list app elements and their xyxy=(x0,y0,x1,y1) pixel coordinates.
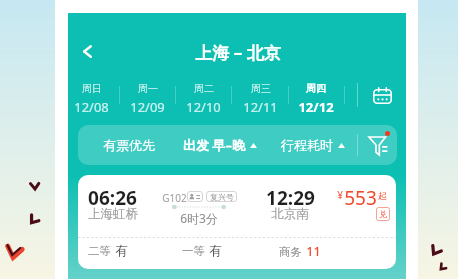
staticText: ¥ xyxy=(337,188,343,202)
staticText: 553 xyxy=(344,185,377,211)
button[interactable]: 周二 xyxy=(175,77,231,117)
button[interactable]: 周四 xyxy=(288,77,344,117)
staticText: 周日 xyxy=(82,82,102,95)
button[interactable]: 周日 xyxy=(63,77,119,117)
staticText: 出发 早–晚 xyxy=(183,136,245,154)
button[interactable]: 有票优先 xyxy=(78,125,180,165)
staticText: 上海虹桥 xyxy=(88,206,138,222)
staticText: 周一 xyxy=(138,82,158,95)
staticText: 12/09 xyxy=(130,98,165,116)
button[interactable]: Calendar xyxy=(366,79,398,111)
staticText: 上海 – 北京 xyxy=(195,41,281,64)
staticText: 周三 xyxy=(251,82,271,95)
button[interactable]: 周三 xyxy=(232,77,288,117)
staticText: 复兴号 xyxy=(210,192,234,202)
staticText: 商务 xyxy=(279,245,302,259)
staticText: G102 xyxy=(162,191,187,205)
button[interactable]: 出发 早–晚 xyxy=(180,125,260,165)
button[interactable]: 行程耗时 xyxy=(269,125,357,165)
staticText: 行程耗时 xyxy=(281,137,333,153)
button[interactable]: 周一 xyxy=(119,77,175,117)
staticText: 12/12 xyxy=(298,98,334,116)
staticText: 12/08 xyxy=(74,98,109,116)
staticText: 6时3分 xyxy=(180,210,218,226)
staticText: 06:26 xyxy=(88,185,137,211)
staticText: 起 xyxy=(378,190,387,201)
staticText: 12/11 xyxy=(243,98,278,116)
button[interactable]: Back xyxy=(71,35,104,68)
staticText: 兑 xyxy=(379,209,387,219)
staticText: 11 xyxy=(306,243,321,260)
staticText: 二等 xyxy=(88,244,111,258)
staticText: 周二 xyxy=(194,82,214,95)
staticText: 有 xyxy=(115,243,128,259)
staticText: 12/10 xyxy=(186,98,221,116)
staticText: 一等 xyxy=(182,244,205,258)
staticText: 有 xyxy=(209,243,222,259)
staticText: 北京南 xyxy=(271,206,309,222)
staticText: 12:29 xyxy=(266,185,315,211)
button[interactable]: Filter xyxy=(358,125,397,165)
staticText: 周四 xyxy=(306,82,326,95)
button[interactable]: 06:26 xyxy=(78,175,396,269)
staticText: 有票优先 xyxy=(103,137,155,153)
